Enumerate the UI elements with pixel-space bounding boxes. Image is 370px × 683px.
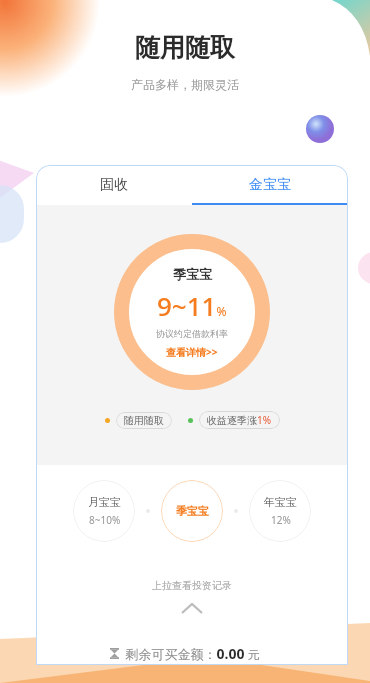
staticText: 金宝宝 [249, 176, 291, 194]
button[interactable]: 金宝宝 [192, 165, 348, 205]
staticText: 查看详情>> [166, 345, 218, 359]
staticText: 随用随取 [124, 414, 164, 427]
button[interactable]: 随用随取 [124, 414, 164, 427]
staticText: 剩余可买金额：0.00 元 [125, 644, 260, 663]
button[interactable]: 上拉查看投资记录 [36, 579, 348, 614]
staticText: 协议约定借款利率 [156, 328, 228, 339]
staticText: 季宝宝 [176, 504, 209, 518]
button[interactable]: 季宝宝 [161, 480, 223, 542]
button[interactable]: 固收 [36, 165, 192, 205]
staticText: 随用随取 [135, 32, 235, 63]
staticText: 9~11% [157, 288, 227, 323]
staticText: 年宝宝 [264, 495, 297, 509]
staticText: 12% [271, 513, 291, 527]
staticText: 8~10% [89, 513, 121, 527]
staticText: 固收 [100, 176, 128, 194]
button[interactable]: 年宝宝 [249, 480, 311, 542]
staticText: 季宝宝 [173, 266, 212, 282]
button[interactable]: 收益逐季涨1% [207, 413, 272, 427]
staticText: 上拉查看投资记录 [152, 579, 232, 592]
staticText: 收益逐季涨1% [207, 413, 272, 427]
button[interactable]: 季宝宝 [114, 234, 270, 390]
button[interactable]: 月宝宝 [73, 480, 135, 542]
staticText: 产品多样，期限灵活 [131, 77, 239, 92]
staticText: 月宝宝 [88, 495, 121, 509]
